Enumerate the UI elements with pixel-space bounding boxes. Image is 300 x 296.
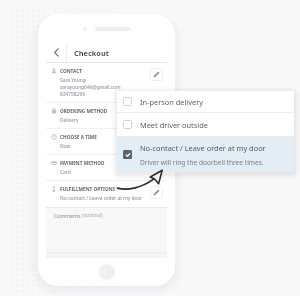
staticText: No-contact / Leave order at my door [140, 143, 266, 153]
staticText: Checkout [74, 48, 109, 58]
staticText: CHOOSE A TIME [60, 134, 97, 140]
staticText: Now [60, 143, 71, 150]
button[interactable]: Edit [150, 68, 163, 81]
button[interactable]: CONTACT [46, 63, 167, 102]
button[interactable]: Meet driver outside [117, 113, 294, 136]
button[interactable]: ORDERING METHOD [46, 103, 167, 128]
staticText: (optional) [82, 212, 103, 218]
staticText: Meet driver outside [140, 120, 208, 130]
staticText: FULFILLMENT OPTIONS [60, 186, 116, 192]
staticText: sarayoung646@gmail.com [60, 84, 121, 91]
staticText: In-person delivery [140, 97, 203, 107]
staticText: Delivery [60, 117, 79, 124]
staticText: Driver will ring the doorbell three time… [140, 158, 264, 167]
button[interactable]: Back [46, 43, 66, 62]
button[interactable]: FULFILLMENT OPTIONS [46, 181, 167, 207]
button[interactable]: In-person delivery [117, 91, 294, 112]
staticText: Sara Young [60, 77, 86, 84]
staticText: CONTACT [60, 68, 82, 74]
staticText: Card [60, 169, 71, 176]
button[interactable]: Edit [150, 186, 163, 199]
button[interactable]: No-contact / Leave order at my door [117, 137, 294, 172]
button[interactable]: CHOOSE A TIME [46, 129, 167, 154]
staticText: PAYMENT METHOD [60, 160, 105, 166]
staticText: No-contact / Leave order at my door [60, 195, 143, 202]
staticText: ORDERING METHOD [60, 108, 108, 114]
staticText: Comments [54, 212, 82, 219]
staticText: 834758299 [60, 91, 85, 98]
button[interactable]: PAYMENT METHOD [46, 155, 167, 180]
